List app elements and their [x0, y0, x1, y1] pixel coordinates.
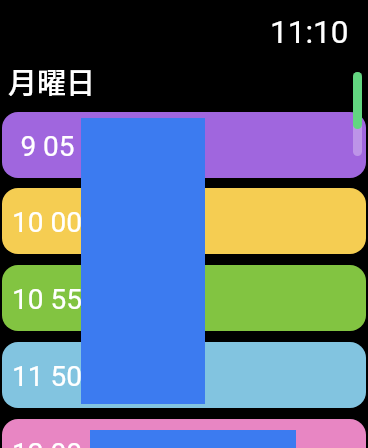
staticText: 9 05 [20, 130, 75, 163]
button[interactable]: 9 05 [2, 112, 366, 178]
staticText: 11 50 [12, 360, 82, 393]
staticText: 12 00 [12, 437, 82, 448]
staticText: 10 00 [12, 206, 82, 239]
button[interactable]: 12 00 [2, 419, 366, 448]
button[interactable]: 10 55 [2, 265, 366, 331]
button[interactable]: 11 50 [2, 342, 366, 408]
staticText: 11:10 [270, 14, 349, 51]
staticText: 10 55 [12, 283, 82, 316]
staticText: 月曜日 [8, 60, 96, 96]
button[interactable]: 10 00 [2, 188, 366, 254]
